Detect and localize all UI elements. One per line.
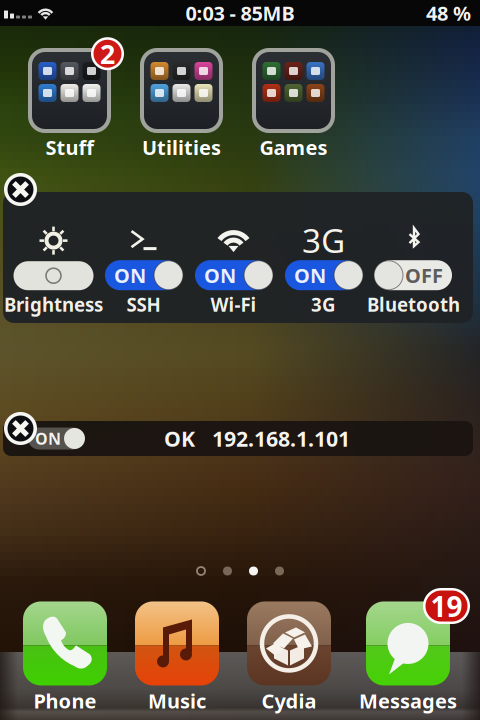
staticText: 0:03 - 85MB [185,0,294,26]
staticText: 48 % [426,0,471,26]
button[interactable]: ON [105,260,182,290]
staticText: Utilities [142,134,221,161]
button[interactable]: Games [252,48,335,161]
button[interactable]: OFF [375,260,452,290]
staticText: Phone [33,687,96,714]
button[interactable]: Cydia [247,601,331,714]
staticText: Bluetooth [367,292,460,317]
button[interactable]: Phone [23,601,107,714]
staticText: Music [148,687,206,714]
button[interactable]: Close [4,412,37,445]
button[interactable] [13,261,93,290]
staticText: 2 [100,36,115,71]
button[interactable]: ON [285,260,362,290]
button[interactable]: Utilities [140,48,223,161]
staticText: ON [294,262,326,288]
staticText: OK [164,424,195,453]
staticText: ON [35,428,61,449]
staticText: 19 [430,587,462,625]
staticText: 3G [302,218,345,262]
button[interactable]: Toggle [28,427,84,449]
button[interactable]: 2 [28,48,111,161]
staticText: SSH [126,292,160,317]
staticText: Wi-Fi [210,292,256,317]
staticText: Brightness [4,292,103,317]
staticText: 3G [311,292,336,317]
staticText: Stuff [45,134,93,161]
staticText: Cydia [261,687,316,714]
button[interactable]: ON [195,260,272,290]
button[interactable]: Close [4,173,37,206]
staticText: ON [114,262,146,288]
button[interactable]: 19 [359,601,457,714]
staticText: Messages [359,687,457,714]
staticText: Games [259,134,327,161]
staticText: OFF [405,262,443,288]
staticText: 192.168.1.101 [212,424,350,453]
staticText: ON [204,262,236,288]
button[interactable]: Music [135,601,219,714]
